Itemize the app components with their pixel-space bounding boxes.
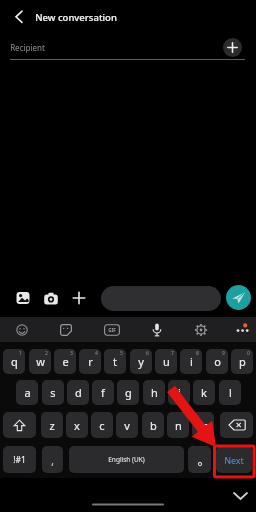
staticText: k bbox=[201, 385, 207, 400]
button[interactable] bbox=[223, 38, 242, 57]
staticText: English (UK) bbox=[108, 455, 145, 464]
button[interactable]: w bbox=[29, 349, 51, 374]
button[interactable]: y bbox=[130, 349, 152, 374]
button[interactable]: n bbox=[167, 412, 189, 438]
button[interactable]: l bbox=[219, 380, 241, 405]
button[interactable]: h bbox=[143, 380, 165, 405]
button[interactable]: !#1 bbox=[3, 446, 36, 473]
staticText: b bbox=[150, 418, 157, 433]
button[interactable]: r bbox=[79, 349, 101, 374]
button[interactable]: c bbox=[91, 412, 113, 438]
button[interactable] bbox=[220, 412, 253, 438]
staticText: 6 bbox=[146, 350, 149, 357]
staticText: f bbox=[101, 385, 105, 400]
staticText: GIF bbox=[108, 327, 116, 333]
staticText: n bbox=[175, 418, 182, 433]
staticText: i bbox=[190, 354, 193, 369]
button[interactable] bbox=[3, 412, 36, 438]
button[interactable]: k bbox=[193, 380, 215, 405]
staticText: u bbox=[163, 354, 170, 369]
button[interactable]: , bbox=[42, 446, 63, 473]
staticText: z bbox=[49, 418, 55, 433]
staticText: 4 bbox=[95, 350, 98, 357]
button[interactable]: Next bbox=[216, 446, 252, 473]
staticText: 9 bbox=[222, 350, 225, 357]
button[interactable] bbox=[150, 322, 164, 338]
staticText: 8 bbox=[196, 350, 199, 357]
staticText: New conversation bbox=[35, 11, 117, 24]
button[interactable]: q bbox=[3, 349, 25, 374]
staticText: l bbox=[229, 385, 232, 400]
staticText: t bbox=[113, 354, 117, 369]
button[interactable]: o bbox=[206, 349, 228, 374]
staticText: Next bbox=[224, 454, 244, 466]
button[interactable] bbox=[226, 285, 251, 310]
staticText: 3 bbox=[70, 350, 73, 357]
staticText: 7 bbox=[171, 350, 174, 357]
staticText: q bbox=[11, 354, 18, 369]
button[interactable] bbox=[15, 323, 29, 337]
button[interactable]: s bbox=[42, 380, 64, 405]
button[interactable]: t bbox=[104, 349, 126, 374]
button[interactable] bbox=[59, 323, 73, 337]
button[interactable]: English (UK) bbox=[69, 446, 184, 473]
staticText: w bbox=[36, 354, 45, 369]
staticText: p bbox=[239, 354, 246, 369]
button[interactable] bbox=[234, 320, 252, 336]
staticText: v bbox=[124, 418, 130, 433]
staticText: 5 bbox=[120, 350, 123, 357]
staticText: m bbox=[198, 418, 209, 433]
button[interactable]: u bbox=[155, 349, 177, 374]
staticText: s bbox=[50, 385, 56, 400]
button[interactable]: GIF bbox=[104, 324, 120, 336]
button[interactable]: z bbox=[41, 412, 63, 438]
staticText: e bbox=[62, 354, 69, 369]
button[interactable]: m bbox=[192, 412, 214, 438]
staticText: h bbox=[151, 385, 158, 400]
staticText: d bbox=[75, 385, 82, 400]
button[interactable] bbox=[16, 291, 30, 305]
staticText: 0 bbox=[247, 350, 250, 357]
button[interactable]: p bbox=[231, 349, 253, 374]
button[interactable]: x bbox=[66, 412, 88, 438]
staticText: g bbox=[125, 385, 132, 400]
button[interactable]: j bbox=[168, 380, 190, 405]
staticText: x bbox=[74, 418, 80, 433]
staticText: a bbox=[24, 385, 31, 400]
button[interactable]: v bbox=[116, 412, 138, 438]
staticText: c bbox=[99, 418, 105, 433]
button[interactable]: f bbox=[92, 380, 114, 405]
staticText: o bbox=[214, 354, 221, 369]
staticText: 1 bbox=[19, 350, 22, 357]
button[interactable]: e bbox=[54, 349, 76, 374]
button[interactable]: a bbox=[16, 380, 38, 405]
button[interactable]: i bbox=[180, 349, 202, 374]
staticText: 2 bbox=[45, 350, 48, 357]
staticText: Recipient bbox=[10, 42, 45, 53]
button[interactable] bbox=[194, 323, 208, 337]
staticText: j bbox=[178, 385, 181, 400]
button[interactable] bbox=[188, 446, 211, 473]
button[interactable] bbox=[44, 292, 58, 306]
button[interactable] bbox=[10, 8, 28, 26]
staticText: !#1 bbox=[13, 454, 26, 466]
button[interactable] bbox=[72, 291, 86, 305]
button[interactable] bbox=[101, 286, 221, 311]
button[interactable]: b bbox=[142, 412, 164, 438]
staticText: , bbox=[51, 454, 54, 468]
staticText: y bbox=[138, 354, 144, 369]
staticText: r bbox=[88, 354, 93, 369]
button[interactable]: g bbox=[117, 380, 139, 405]
button[interactable]: d bbox=[67, 380, 89, 405]
